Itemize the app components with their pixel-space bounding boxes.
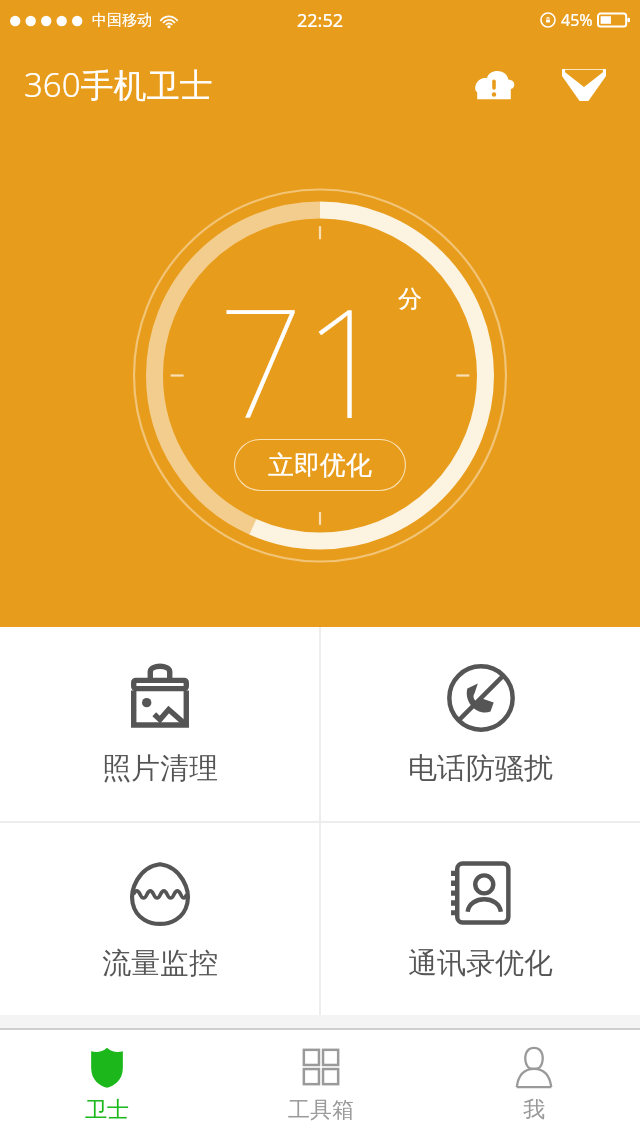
staticText: 照片清理 <box>102 750 218 787</box>
button[interactable]: 照片清理 <box>0 627 319 821</box>
button[interactable]: Messages <box>554 55 614 115</box>
staticText: 我 <box>523 1096 545 1124</box>
staticText: 71 <box>218 258 390 462</box>
staticText: 电话防骚扰 <box>408 750 553 787</box>
staticText: 分 <box>398 284 422 314</box>
staticText: 45% <box>561 9 593 31</box>
staticText: 360手机卫士 <box>24 62 213 107</box>
staticText: 流量监控 <box>102 945 218 982</box>
staticText: 卫士 <box>85 1096 129 1124</box>
staticText: 中国移动 <box>92 11 152 30</box>
button[interactable]: 流量监控 <box>0 823 319 1015</box>
button[interactable]: Alerts <box>464 55 524 115</box>
button[interactable]: 我 <box>427 1030 640 1136</box>
button[interactable]: 工具箱 <box>214 1030 427 1136</box>
staticText: 工具箱 <box>288 1096 354 1124</box>
button[interactable]: 立即优化 <box>234 439 406 491</box>
button[interactable]: 电话防骚扰 <box>321 627 640 821</box>
staticText: 通讯录优化 <box>408 945 553 982</box>
button[interactable]: 卫士 <box>0 1030 214 1136</box>
button[interactable]: 通讯录优化 <box>321 823 640 1015</box>
staticText: 立即优化 <box>268 449 372 482</box>
staticText: 22:52 <box>297 8 344 33</box>
